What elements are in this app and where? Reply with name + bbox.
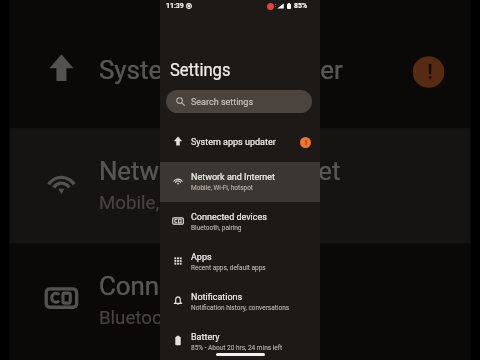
- button[interactable]: Network and Internet: [10, 128, 470, 243]
- button[interactable]: System apps updater: [10, 13, 470, 128]
- staticText: Search settings: [191, 97, 254, 108]
- staticText: Mobile, Wi-Fi, hotspot: [191, 184, 253, 192]
- button[interactable]: Search settings: [166, 90, 312, 113]
- staticText: Mobile, Wi-Fi, hotspot: [99, 191, 277, 214]
- staticText: Bluetooth, pairing: [99, 307, 246, 330]
- button[interactable]: Connected devices: [160, 202, 320, 242]
- staticText: Network and Internet: [99, 157, 341, 189]
- staticText: Battery: [191, 332, 220, 343]
- button[interactable]: Apps: [160, 242, 320, 282]
- staticText: System apps updater: [191, 137, 276, 148]
- staticText: !: [305, 139, 307, 147]
- staticText: 11:39: [166, 2, 184, 10]
- button[interactable]: System apps updater: [160, 122, 320, 162]
- button[interactable]: Connected devices: [10, 243, 470, 359]
- button[interactable]: Battery: [160, 322, 320, 360]
- button[interactable]: Notifications: [160, 282, 320, 322]
- staticText: Bluetooth, pairing: [191, 224, 242, 232]
- staticText: 85%: [294, 2, 308, 10]
- staticText: !: [427, 62, 433, 85]
- staticText: Connected devices: [99, 272, 318, 304]
- staticText: Network and Internet: [191, 172, 275, 183]
- button[interactable]: Apps: [10, 359, 470, 360]
- staticText: Recent apps, default apps: [191, 264, 266, 272]
- staticText: Notification history, conversations: [191, 304, 290, 312]
- staticText: Apps: [191, 252, 212, 263]
- staticText: 85% - About 20 hrs, 24 mins left: [191, 344, 283, 352]
- staticText: System apps updater: [99, 56, 344, 88]
- button[interactable]: Network and Internet: [160, 162, 320, 202]
- staticText: Settings: [170, 59, 231, 80]
- staticText: Connected devices: [191, 212, 267, 223]
- staticText: Notifications: [191, 292, 243, 303]
